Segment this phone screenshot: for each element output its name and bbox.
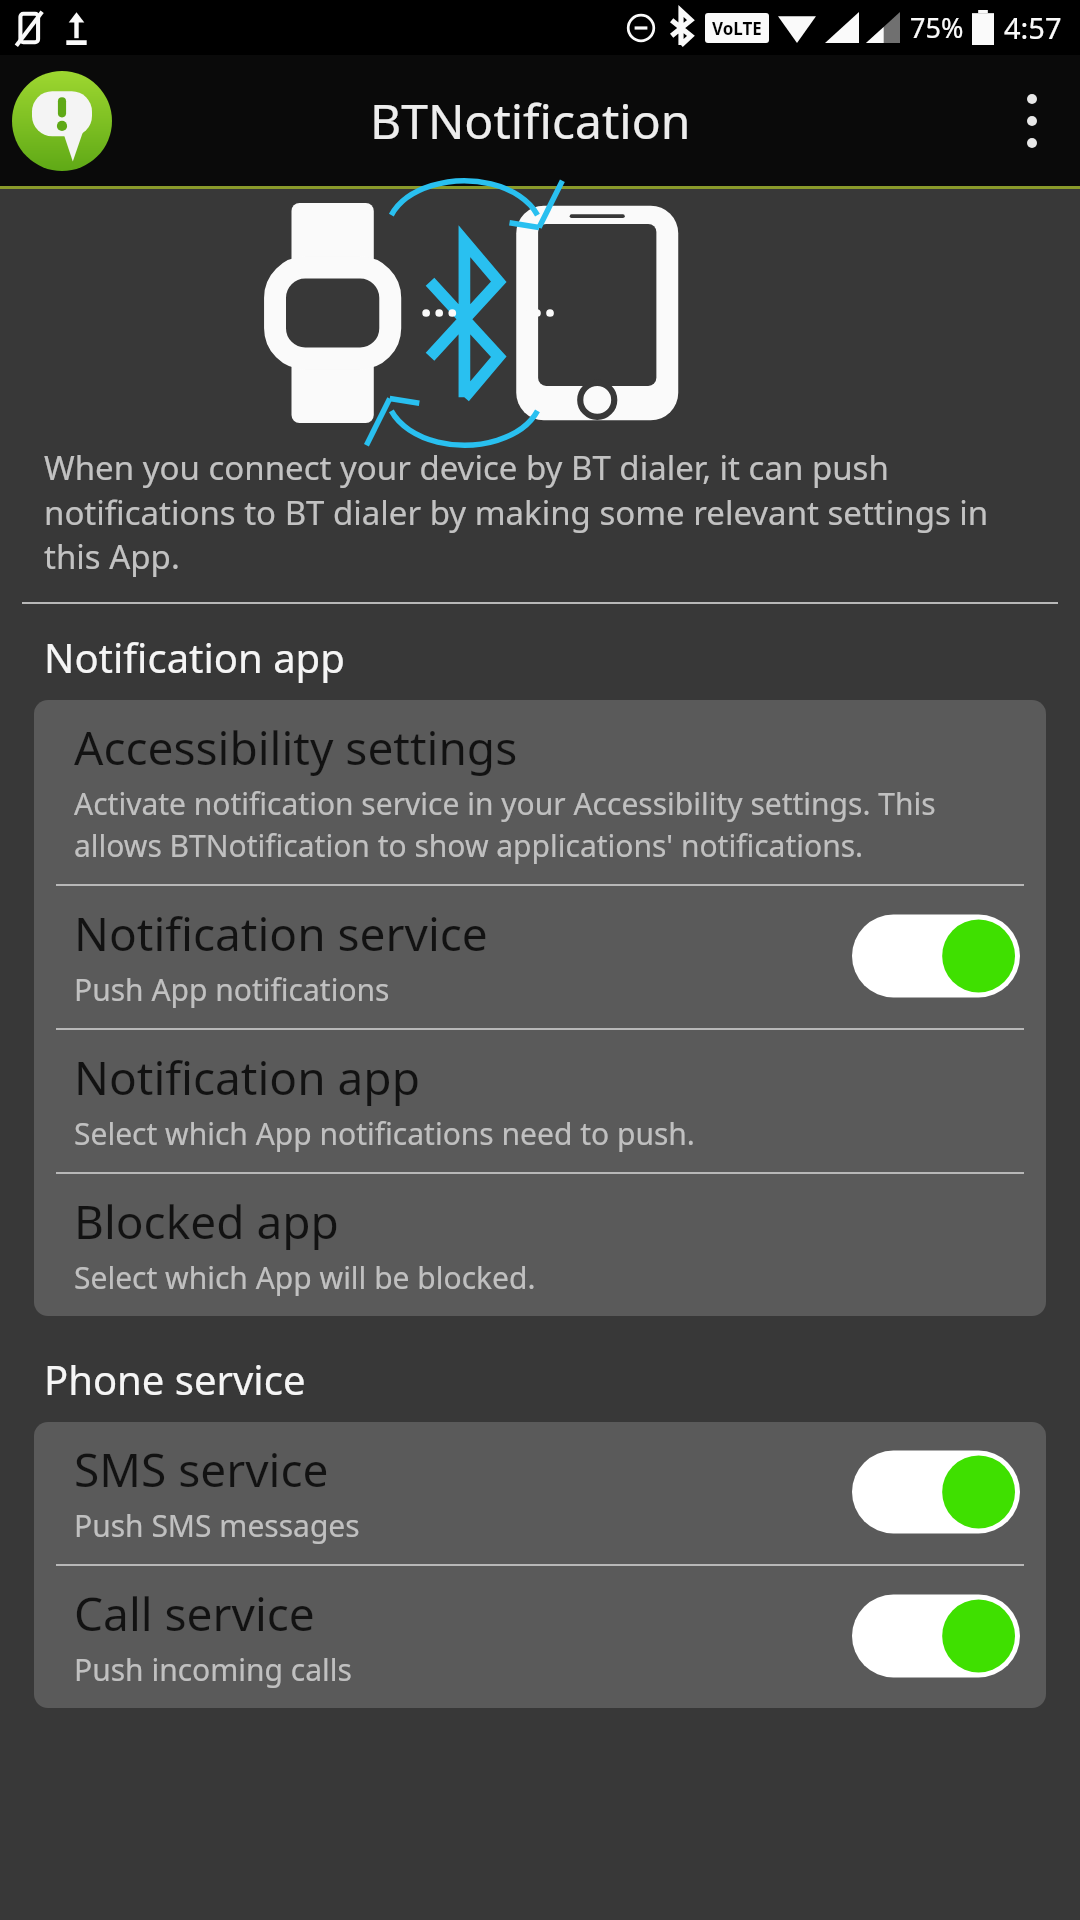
staticText: Push App notifications — [74, 969, 390, 1010]
staticText: Call service — [74, 1582, 315, 1645]
button[interactable]: More options — [984, 55, 1080, 186]
button[interactable]: Toggle Call service on — [852, 1591, 1020, 1681]
staticText: When you connect your device by BT diale… — [44, 445, 1040, 578]
button[interactable]: Blocked app — [34, 1174, 1046, 1316]
button[interactable]: Accessibility settings — [34, 700, 1046, 884]
staticText: BTNotification — [370, 88, 691, 153]
staticText: 75% — [910, 9, 964, 46]
staticText: Select which App notifications need to p… — [74, 1113, 695, 1154]
button[interactable]: Notification app — [34, 1030, 1046, 1172]
button[interactable]: Toggle Notification service on — [852, 911, 1020, 1001]
staticText: Activate notification service in your Ac… — [74, 783, 1020, 866]
staticText: 4:57 — [1004, 8, 1062, 47]
button[interactable]: SMS service — [34, 1422, 1046, 1564]
button[interactable]: Toggle SMS service on — [852, 1447, 1020, 1537]
staticText: Blocked app — [74, 1190, 339, 1253]
staticText: Notification service — [74, 902, 488, 965]
staticText: VoLTE — [712, 17, 762, 40]
button[interactable]: Notification service — [34, 886, 1046, 1028]
staticText: Accessibility settings — [74, 716, 518, 779]
staticText: Push incoming calls — [74, 1649, 352, 1690]
staticText: Notification app — [74, 1046, 420, 1109]
staticText: Phone service — [44, 1352, 306, 1406]
staticText: SMS service — [74, 1438, 329, 1501]
staticText: Push SMS messages — [74, 1505, 360, 1546]
button[interactable]: Call service — [34, 1566, 1046, 1708]
staticText: Notification app — [44, 630, 345, 684]
staticText: Select which App will be blocked. — [74, 1257, 536, 1298]
